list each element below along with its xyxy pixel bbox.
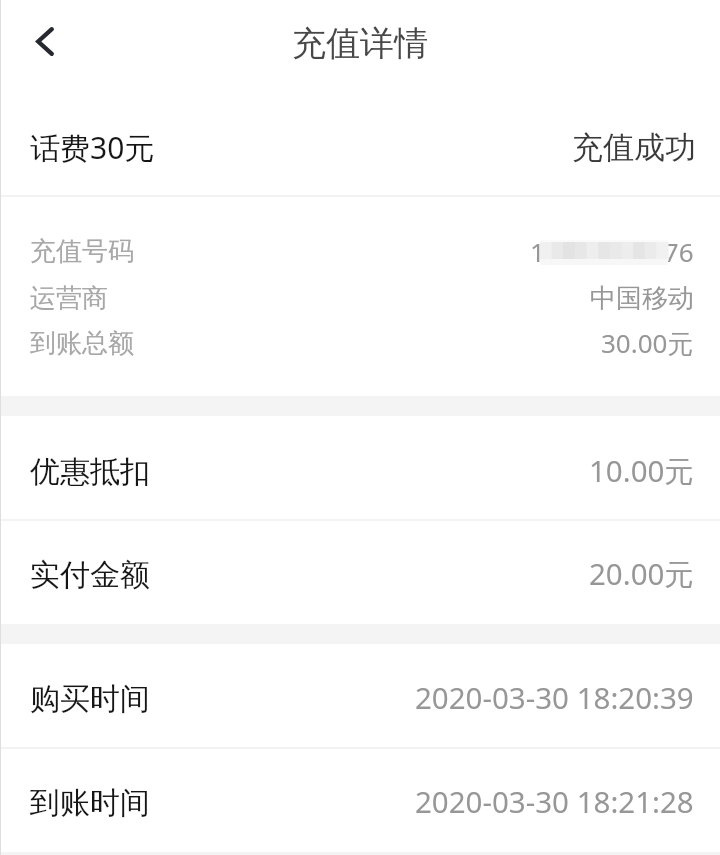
staticText: 购买时间 bbox=[30, 680, 150, 718]
staticText: 15900000076 bbox=[530, 234, 694, 269]
staticText: 充值成功 bbox=[572, 128, 696, 167]
staticText: 20.00元 bbox=[589, 553, 694, 593]
staticText: 实付金额 bbox=[30, 556, 150, 594]
button[interactable]: 充值号码 bbox=[0, 228, 720, 274]
staticText: 2020-03-30 18:20:39 bbox=[415, 677, 694, 717]
button[interactable]: 实付金额 bbox=[0, 521, 720, 624]
staticText: 2020-03-30 18:21:28 bbox=[415, 781, 694, 821]
button[interactable]: 到账时间 bbox=[0, 749, 720, 852]
staticText: 到账时间 bbox=[30, 784, 150, 822]
staticText: 到账总额 bbox=[30, 327, 134, 360]
staticText: 30.00元 bbox=[601, 325, 694, 361]
staticText: 话费30元 bbox=[30, 127, 155, 168]
button[interactable]: 购买时间 bbox=[0, 644, 720, 747]
button[interactable]: Back bbox=[14, 12, 76, 74]
staticText: 充值号码 bbox=[30, 235, 134, 268]
staticText: 充值详情 bbox=[292, 22, 428, 65]
staticText: 优惠抵扣 bbox=[30, 453, 150, 491]
button[interactable]: 运营商 bbox=[0, 275, 720, 321]
button[interactable]: 话费30元 bbox=[0, 85, 720, 195]
button[interactable]: 到账总额 bbox=[0, 320, 720, 366]
button[interactable]: 优惠抵扣 bbox=[0, 416, 720, 519]
staticText: 中国移动 bbox=[590, 282, 694, 315]
staticText: 10.00元 bbox=[589, 450, 694, 490]
staticText: 运营商 bbox=[30, 282, 108, 315]
